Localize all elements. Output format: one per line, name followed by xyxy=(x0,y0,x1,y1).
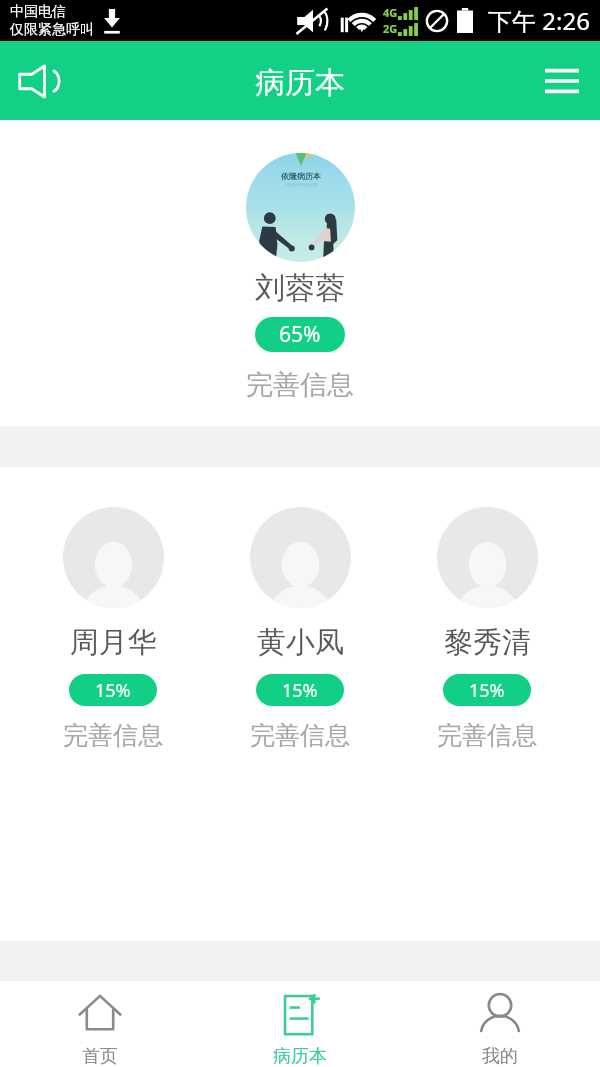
button[interactable]: 首页 xyxy=(0,981,200,1067)
staticText: 完善信息 xyxy=(63,720,163,751)
staticText: 黄小凤 xyxy=(257,624,344,661)
button[interactable]: 周月华 xyxy=(39,507,187,751)
staticText: 黎秀清 xyxy=(444,624,531,661)
staticText: 刘蓉蓉 xyxy=(255,269,345,307)
staticText: 4G xyxy=(383,5,398,20)
button[interactable]: 15% xyxy=(69,674,157,706)
staticText: 15% xyxy=(95,678,131,703)
staticText: 我的 xyxy=(482,1045,518,1067)
staticText: 65% xyxy=(279,320,321,349)
button[interactable]: 病历本 xyxy=(200,981,400,1067)
staticText: 完善信息 xyxy=(250,720,350,751)
staticText: 完善信息 xyxy=(437,720,537,751)
staticText: 首页 xyxy=(82,1045,118,1067)
staticText: 仅限紧急呼叫 xyxy=(10,21,94,39)
button[interactable]: 15% xyxy=(256,674,344,706)
staticText: 记录您的健康点滴 xyxy=(285,182,317,187)
button[interactable]: Sound xyxy=(8,50,70,112)
staticText: 完善信息 xyxy=(246,368,354,402)
staticText: 下午 2:26 xyxy=(488,4,590,37)
staticText: 病历本 xyxy=(255,64,345,102)
button[interactable]: 15% xyxy=(443,674,531,706)
button[interactable]: 我的 xyxy=(400,981,600,1067)
staticText: 中国电信 xyxy=(10,3,66,21)
button[interactable]: 65% xyxy=(255,317,345,352)
button[interactable]: Menu xyxy=(534,53,590,109)
staticText: 依隆病历本 xyxy=(281,171,321,181)
staticText: 周月华 xyxy=(70,624,157,661)
button[interactable]: 依隆病历本 xyxy=(0,120,600,426)
button[interactable]: 黎秀清 xyxy=(413,507,561,751)
button[interactable]: 黄小凤 xyxy=(226,507,374,751)
staticText: 病历本 xyxy=(273,1045,327,1067)
staticText: 15% xyxy=(282,678,318,703)
staticText: 2G xyxy=(383,21,398,36)
staticText: 15% xyxy=(469,678,505,703)
